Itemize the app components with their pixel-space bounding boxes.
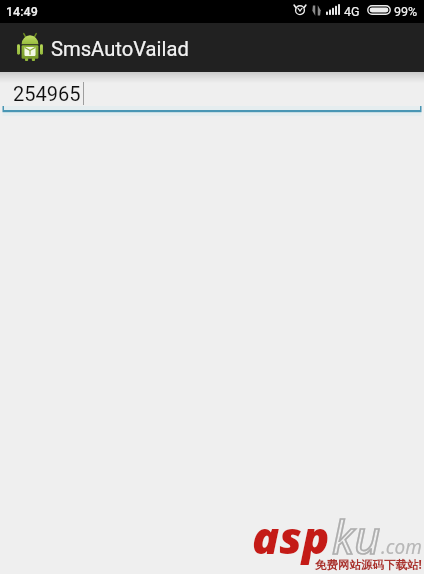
staticText: 99% xyxy=(394,4,418,19)
staticText: 免费网站源码下载站! xyxy=(315,557,422,573)
staticText: SmsAutoVailad xyxy=(51,37,189,61)
staticText: ku xyxy=(332,506,381,567)
staticText: 4G xyxy=(344,4,360,19)
button[interactable]: 254965 xyxy=(0,72,424,112)
staticText: 14:49 xyxy=(6,4,38,19)
staticText: .com xyxy=(381,534,422,560)
staticText: 254965 xyxy=(13,82,81,105)
staticText: asp xyxy=(252,506,330,567)
